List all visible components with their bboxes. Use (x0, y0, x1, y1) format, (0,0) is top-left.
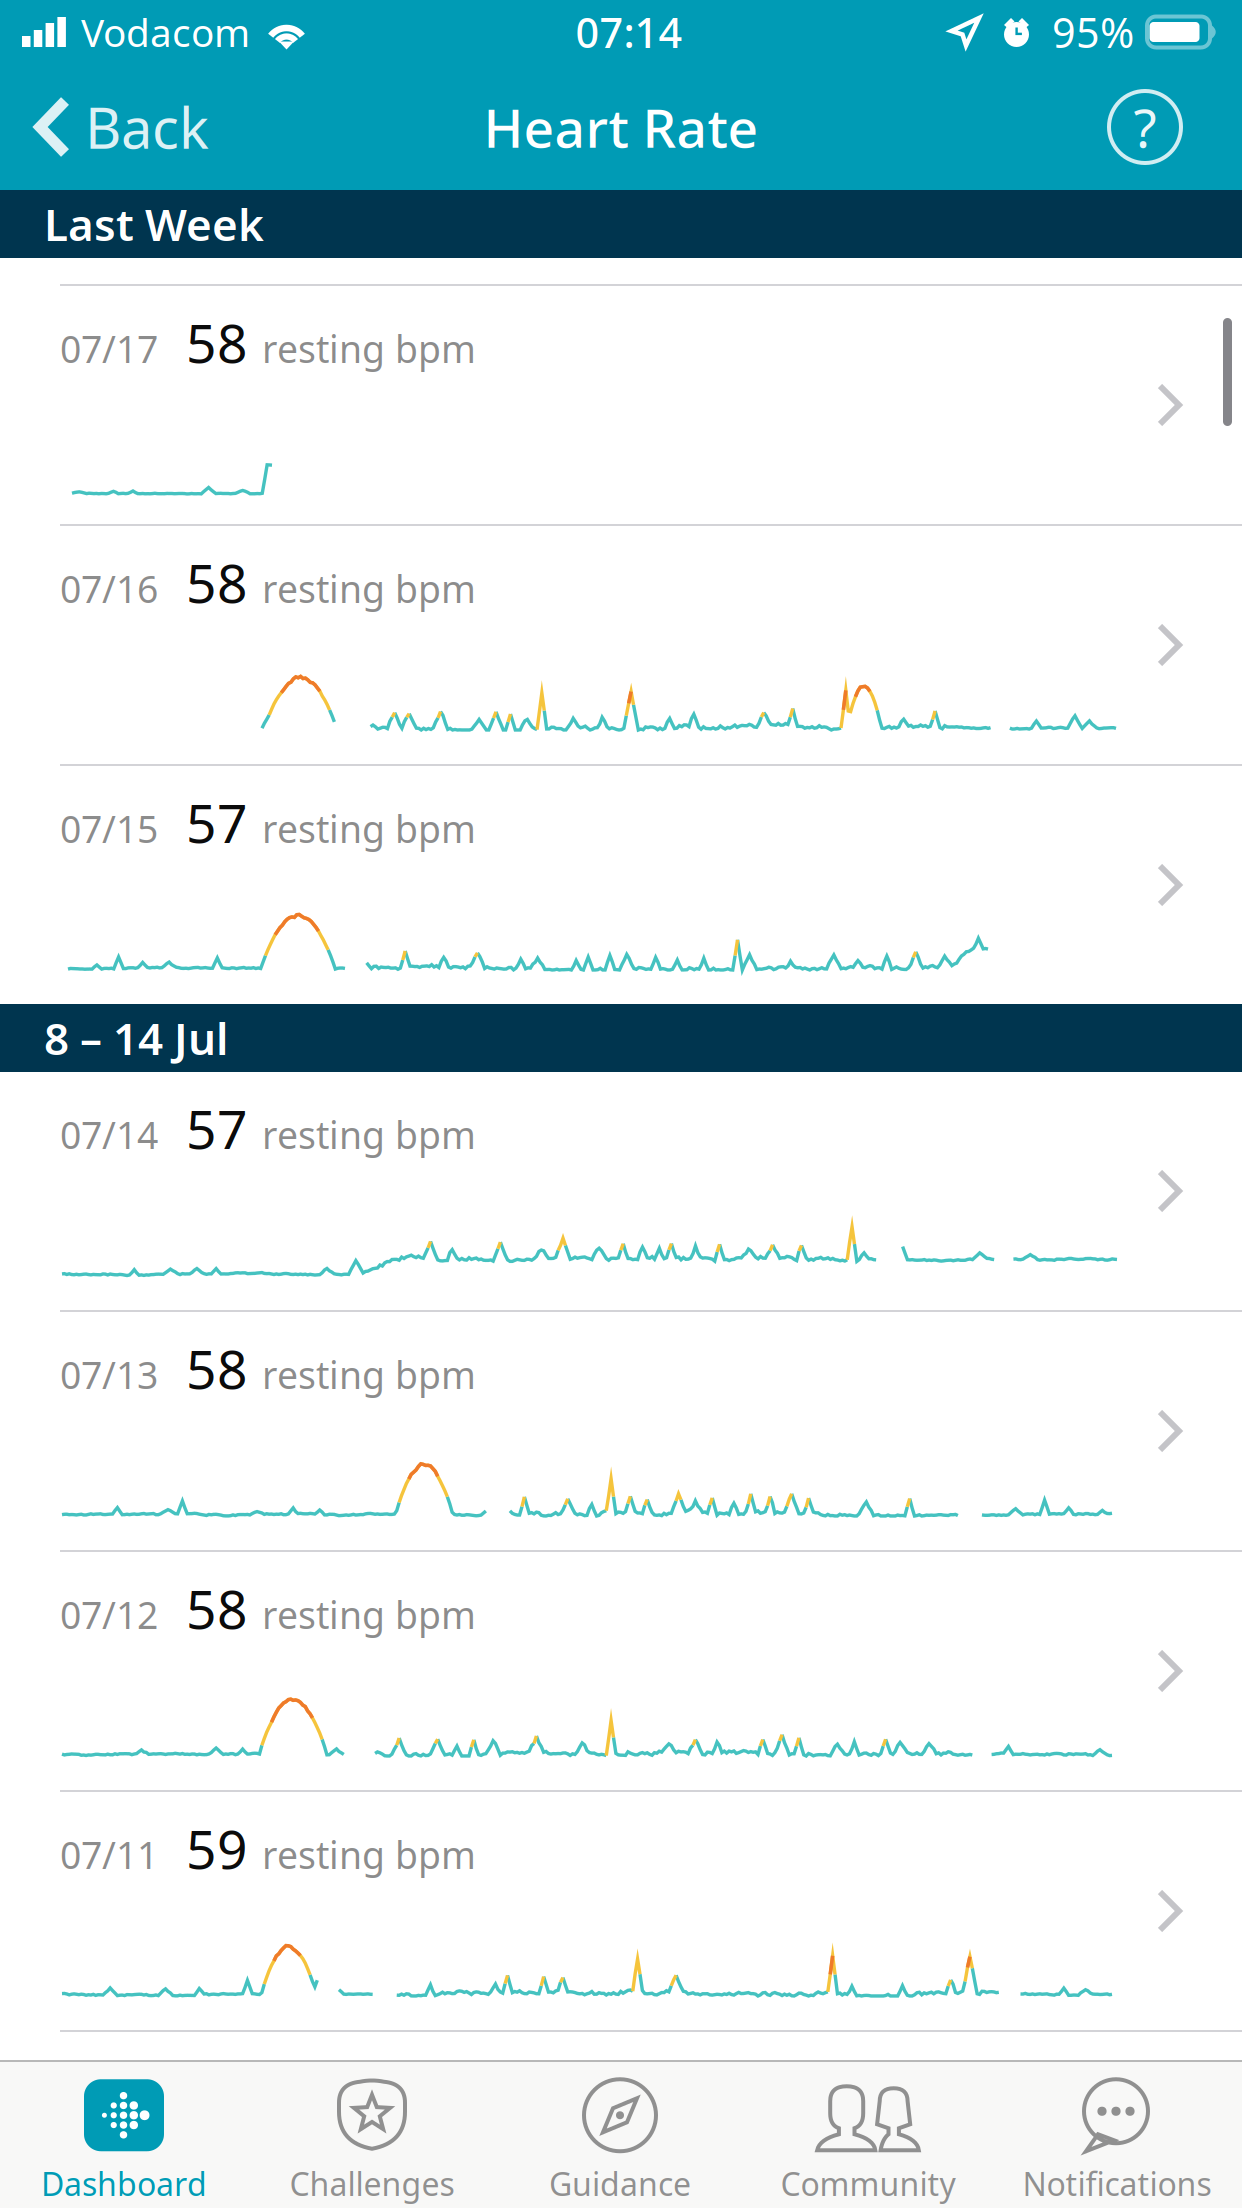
staticText: Back (85, 90, 209, 164)
staticText: 07/11 (60, 1830, 158, 1879)
button[interactable]: Guidance (496, 2062, 744, 2208)
staticText: 57 (186, 1093, 248, 1164)
staticText: 58 (186, 547, 248, 618)
button[interactable]: Community (744, 2062, 992, 2208)
staticText: ? (1133, 92, 1156, 162)
staticText: 58 (186, 1573, 248, 1644)
staticText: Challenges (289, 2162, 454, 2205)
staticText: 07:14 (575, 5, 682, 59)
staticText: 8 – 14 Jul (44, 1009, 228, 1067)
staticText: resting bpm (262, 564, 476, 613)
staticText: Community (780, 2162, 955, 2205)
button[interactable]: Challenges (248, 2062, 496, 2208)
staticText: 07/12 (60, 1590, 158, 1639)
staticText: Notifications (1022, 2162, 1211, 2205)
staticText: 58 (186, 307, 248, 378)
staticText: Vodacom (81, 6, 250, 58)
staticText: resting bpm (262, 324, 476, 373)
button[interactable]: Notifications (992, 2062, 1242, 2208)
staticText: resting bpm (262, 804, 476, 853)
staticText: 59 (186, 1813, 248, 1884)
button[interactable]: 07/14 (0, 1072, 1242, 1310)
staticText: 57 (186, 787, 248, 858)
staticText: 07/17 (60, 324, 158, 373)
button[interactable]: 07/15 (0, 766, 1242, 1004)
staticText: Dashboard (41, 2162, 207, 2205)
button[interactable]: 07/12 (0, 1552, 1242, 1790)
staticText: 07/14 (60, 1110, 158, 1159)
staticText: Last Week (44, 195, 264, 253)
staticText: resting bpm (262, 1350, 476, 1399)
button[interactable]: Help (1048, 64, 1242, 190)
button[interactable]: 07/11 (0, 1792, 1242, 2030)
staticText: resting bpm (262, 1590, 476, 1639)
button[interactable]: Dashboard (0, 2062, 248, 2208)
button[interactable]: 07/13 (0, 1312, 1242, 1550)
staticText: 07/13 (60, 1350, 158, 1399)
staticText: resting bpm (262, 1830, 476, 1879)
button[interactable]: 07/17 (0, 286, 1242, 524)
staticText: 58 (186, 1333, 248, 1404)
button[interactable]: 07/16 (0, 526, 1242, 764)
staticText: Heart Rate (483, 92, 758, 162)
button[interactable]: Back (0, 64, 235, 190)
staticText: 95% (1052, 5, 1134, 59)
staticText: 07/15 (60, 804, 158, 853)
staticText: Guidance (549, 2162, 691, 2205)
staticText: 07/16 (60, 564, 158, 613)
staticText: resting bpm (262, 1110, 476, 1159)
